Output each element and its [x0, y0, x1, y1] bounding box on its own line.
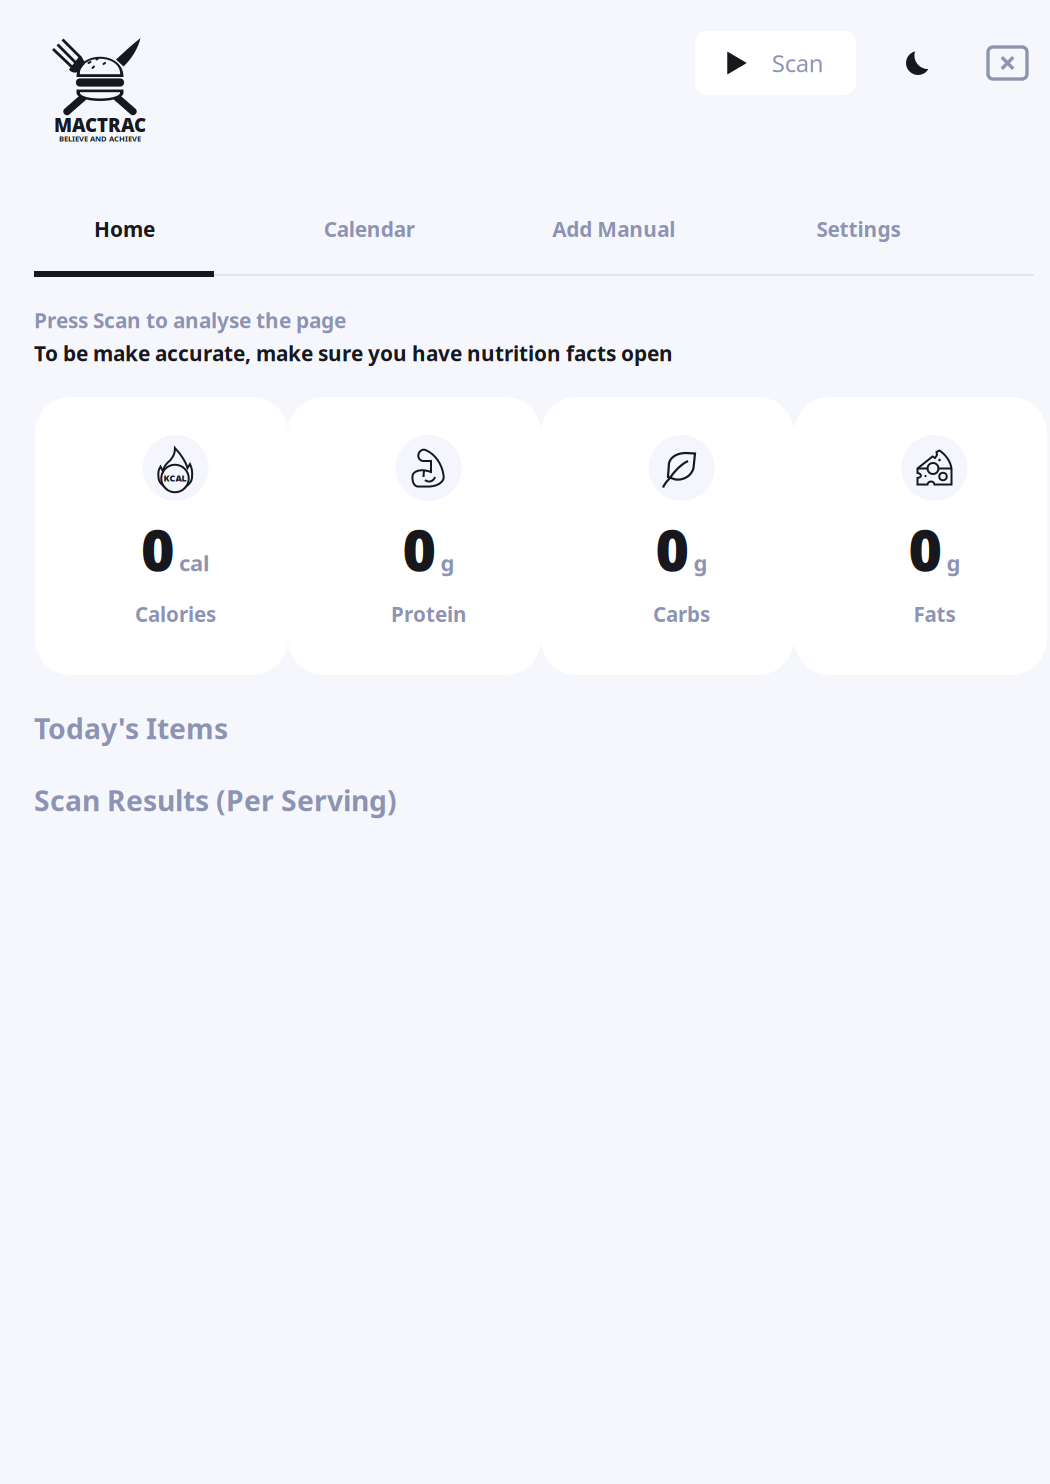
- button[interactable]: Close: [988, 47, 1027, 79]
- staticText: To be make accurate, make sure you have …: [34, 339, 673, 367]
- staticText: Fats: [913, 600, 955, 628]
- staticText: 0: [141, 510, 175, 588]
- staticText: BELIEVE AND ACHIEVE: [59, 133, 141, 144]
- button[interactable]: Calendar: [247, 199, 491, 277]
- staticText: Carbs: [653, 600, 710, 628]
- staticText: Today's Items: [34, 709, 228, 747]
- button[interactable]: Home: [2, 199, 247, 277]
- staticText: Add Manual: [552, 215, 675, 243]
- staticText: Press Scan to analyse the page: [34, 306, 346, 334]
- button[interactable]: Add Manual: [491, 199, 736, 277]
- staticText: Scan: [772, 47, 824, 79]
- staticText: 0: [655, 510, 689, 588]
- staticText: 0: [908, 510, 942, 588]
- staticText: Home: [94, 215, 155, 243]
- staticText: g: [693, 548, 707, 578]
- button[interactable]: Dark mode: [890, 35, 946, 91]
- staticText: Protein: [391, 600, 466, 628]
- staticText: 0: [402, 510, 436, 588]
- button[interactable]: Settings: [736, 199, 981, 277]
- staticText: g: [946, 548, 960, 578]
- staticText: MACTRAC: [54, 112, 146, 137]
- staticText: KCAL: [163, 472, 186, 484]
- staticText: Calendar: [324, 215, 415, 243]
- staticText: Scan Results (Per Serving): [34, 781, 397, 819]
- button[interactable]: Scan: [695, 31, 856, 95]
- staticText: cal: [179, 548, 210, 578]
- staticText: g: [440, 548, 454, 578]
- staticText: Calories: [135, 600, 216, 628]
- staticText: Settings: [816, 215, 900, 243]
